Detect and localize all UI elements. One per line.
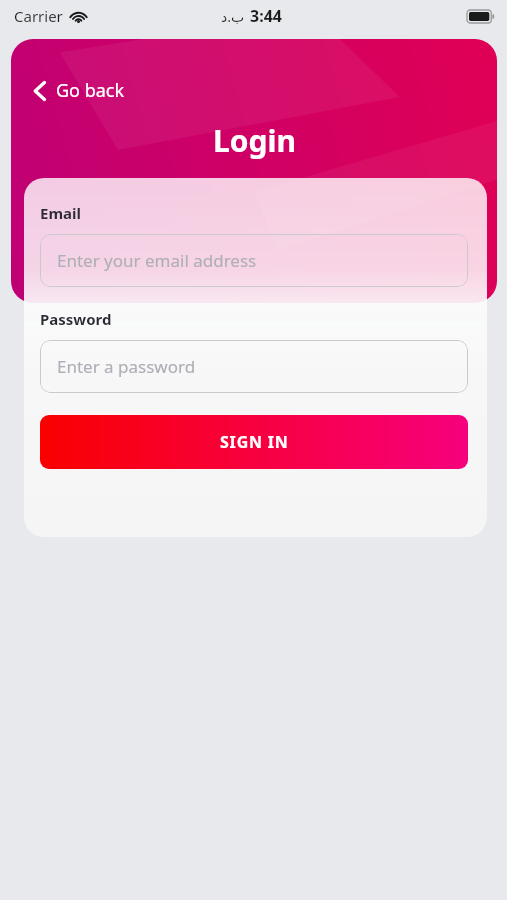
staticText: Enter your email address: [57, 249, 257, 272]
staticText: Enter a password: [57, 355, 196, 378]
staticText: Password: [40, 309, 112, 329]
staticText: Carrier: [14, 6, 63, 26]
staticText: Go back: [56, 78, 125, 103]
button[interactable]: SIGN IN: [40, 415, 468, 469]
staticText: Login: [213, 120, 296, 161]
button[interactable]: Go back: [23, 72, 135, 109]
staticText: 3:44: [250, 5, 282, 27]
button[interactable]: Enter a password: [40, 340, 468, 393]
staticText: ب.د: [221, 7, 245, 26]
button[interactable]: Enter your email address: [40, 234, 468, 287]
staticText: Email: [40, 203, 81, 223]
staticText: SIGN IN: [220, 431, 289, 453]
